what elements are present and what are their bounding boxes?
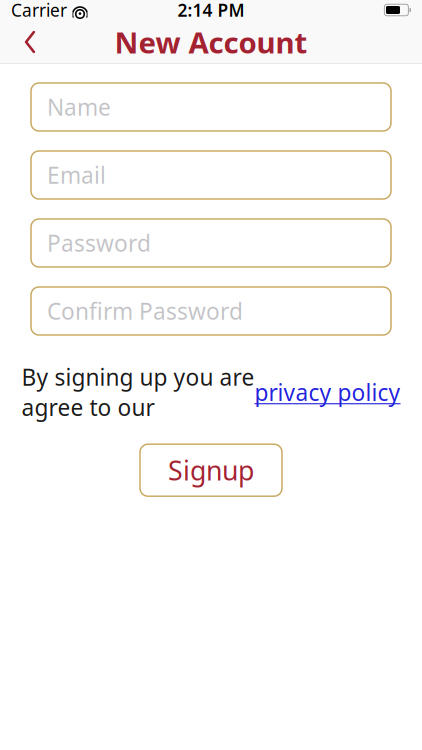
staticText: Confirm Password [47, 296, 243, 326]
button[interactable]: Name [31, 83, 391, 131]
staticText: Password [47, 228, 151, 258]
staticText: Carrier [11, 0, 67, 21]
button[interactable]: Email [31, 151, 391, 199]
staticText: Signup [168, 452, 254, 488]
staticText: Name [47, 92, 111, 122]
button[interactable]: Password [31, 219, 391, 267]
button[interactable]: Confirm Password [31, 287, 391, 335]
staticText: 2:14 PM [177, 0, 244, 21]
staticText: privacy policy [254, 377, 400, 407]
staticText: New Account [114, 22, 307, 61]
button[interactable]: privacy policy [254, 377, 400, 407]
staticText: By signing up you are agree to our [21, 362, 254, 422]
button[interactable]: Signup [140, 444, 282, 496]
staticText: Email [47, 160, 106, 190]
button[interactable]: Back [6, 20, 54, 64]
